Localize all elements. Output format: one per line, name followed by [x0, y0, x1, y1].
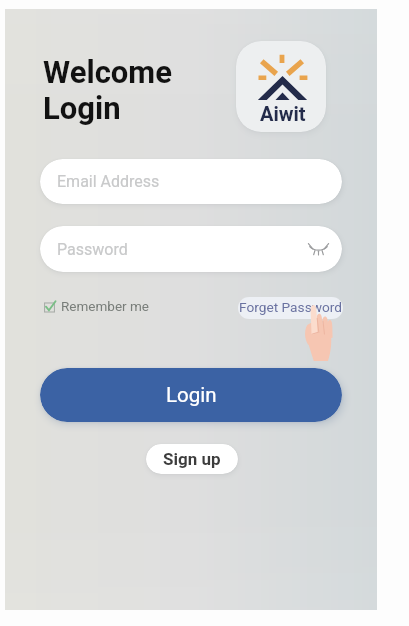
button[interactable]: Show password — [308, 241, 329, 255]
staticText: Forget Password — [239, 299, 343, 315]
staticText: Login — [43, 90, 121, 126]
staticText: Remember me — [61, 298, 149, 314]
button[interactable]: Aiwit logo — [236, 41, 326, 132]
staticText: Password — [57, 240, 128, 259]
staticText: Aiwit — [260, 102, 306, 125]
button[interactable]: Remember me — [44, 296, 149, 316]
button[interactable]: Sign up — [146, 444, 238, 474]
button[interactable]: Password — [40, 226, 342, 272]
staticText: Email Address — [57, 172, 160, 191]
button[interactable]: Email Address — [40, 159, 342, 204]
staticText: Welcome — [43, 54, 172, 90]
button[interactable]: Login — [40, 368, 342, 422]
button[interactable]: Forget Password — [238, 297, 343, 319]
staticText: Sign up — [163, 449, 221, 469]
staticText: Login — [166, 383, 217, 407]
